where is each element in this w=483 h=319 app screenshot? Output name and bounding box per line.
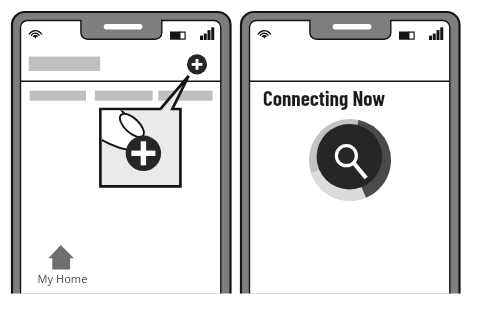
button[interactable]: Tap the add button then Connecting Now <box>0 0 483 319</box>
